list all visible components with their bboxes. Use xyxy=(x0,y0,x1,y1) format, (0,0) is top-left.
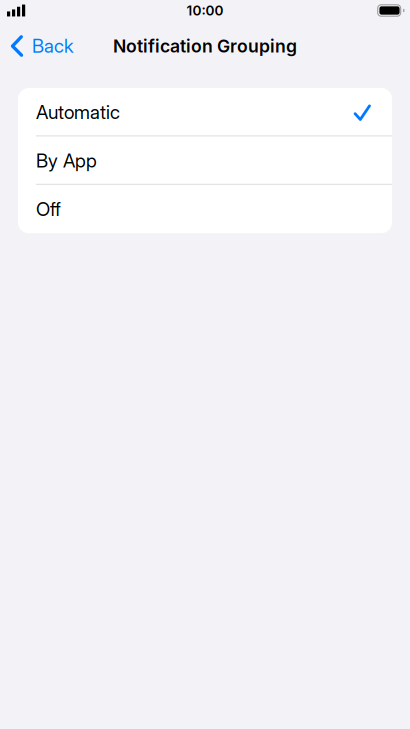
button[interactable]: Off xyxy=(18,185,392,233)
button[interactable]: Automatic xyxy=(18,88,392,136)
staticText: Back xyxy=(32,35,74,57)
button[interactable]: By App xyxy=(18,136,392,185)
staticText: By App xyxy=(36,149,97,172)
staticText: Automatic xyxy=(36,101,120,124)
staticText: Notification Grouping xyxy=(113,35,297,57)
staticText: Off xyxy=(36,197,61,220)
staticText: 10:00 xyxy=(186,2,223,19)
button[interactable]: Back xyxy=(0,28,84,64)
